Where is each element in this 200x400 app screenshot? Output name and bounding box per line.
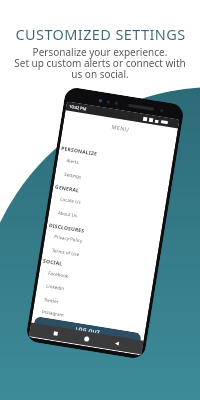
button[interactable]: Twitter [43, 296, 59, 307]
staticText: Twitter [43, 296, 59, 305]
staticText: Instagram [42, 308, 64, 317]
button[interactable]: SOCIAL [42, 258, 63, 269]
button[interactable]: Instagram [41, 308, 64, 319]
staticText: 10:42 PM [69, 104, 87, 112]
staticText: LOG OUT [75, 326, 101, 337]
button[interactable]: Locate Us [59, 196, 81, 207]
button[interactable]: Home [81, 333, 92, 344]
staticText: Facebook [48, 270, 70, 279]
staticText: Privacy Policy [54, 233, 83, 244]
staticText: LinkedIn [46, 282, 65, 291]
staticText: SOCIAL [43, 258, 63, 268]
button[interactable]: PERSONALIZE [61, 145, 98, 159]
staticText: Locate Us [60, 196, 82, 205]
staticText: GENERAL [54, 184, 80, 194]
button[interactable]: Recents [50, 328, 61, 339]
staticText: MENU [111, 123, 130, 133]
staticText: PERSONALIZE [61, 145, 98, 158]
button[interactable]: Back [111, 338, 123, 349]
button[interactable]: DISCLOSURES [48, 222, 85, 236]
button[interactable]: LinkedIn [45, 282, 65, 293]
staticText: DISCLOSURES [48, 222, 85, 235]
staticText: Terms of Use [51, 247, 80, 257]
button[interactable]: Alerts [66, 157, 80, 167]
staticText: Alerts [66, 157, 80, 165]
button[interactable]: Facebook [47, 270, 69, 281]
staticText: Settings [64, 171, 83, 180]
button[interactable]: Terms of Use [51, 247, 80, 259]
staticText: About Us [58, 209, 78, 218]
button[interactable]: Settings [63, 171, 82, 182]
staticText: CUSTOMIZED SETTINGS [15, 24, 186, 44]
button[interactable]: Privacy Policy [53, 233, 83, 246]
button[interactable]: GENERAL [54, 184, 80, 195]
button[interactable]: About Us [57, 209, 78, 220]
staticText: Personalize your experience. Set up cust… [14, 45, 186, 81]
button[interactable]: LOG OUT [33, 316, 142, 346]
